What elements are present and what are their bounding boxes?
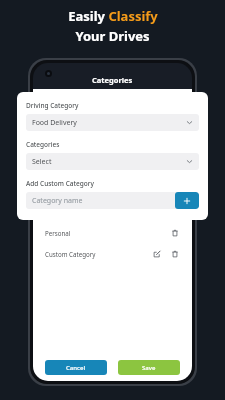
button[interactable]: Personal [33, 222, 192, 243]
button[interactable]: Category name [26, 192, 175, 209]
button[interactable]: Add category [175, 192, 199, 209]
staticText: Add Custom Category [26, 179, 94, 188]
staticText: Driving Category [26, 101, 79, 110]
staticText: Your Drives [75, 27, 150, 45]
staticText: Save [142, 364, 156, 372]
staticText: Select [32, 157, 186, 167]
staticText: Custom Category [45, 250, 151, 258]
staticText: Cancel [66, 364, 86, 372]
button[interactable]: Delete Personal [169, 227, 181, 239]
staticText: Categories [92, 75, 133, 85]
staticText: Personal [45, 229, 169, 237]
button[interactable]: Delete Custom Category [169, 248, 181, 260]
staticText: Food Delivery [32, 118, 186, 128]
button[interactable]: Food Delivery [26, 114, 199, 131]
staticText: DoorDash [45, 208, 169, 216]
button[interactable]: Cancel [45, 360, 107, 375]
button[interactable]: Delete DoorDash [169, 206, 181, 218]
button[interactable]: Save [118, 360, 180, 375]
button[interactable]: Edit Custom Category [151, 248, 163, 260]
staticText: Easily Classify [68, 7, 158, 25]
staticText: Categories [26, 140, 60, 149]
staticText: Category name [32, 196, 83, 206]
button[interactable]: Select [26, 153, 199, 170]
button[interactable]: Custom Category [33, 243, 192, 264]
button[interactable]: DoorDash [33, 201, 192, 222]
